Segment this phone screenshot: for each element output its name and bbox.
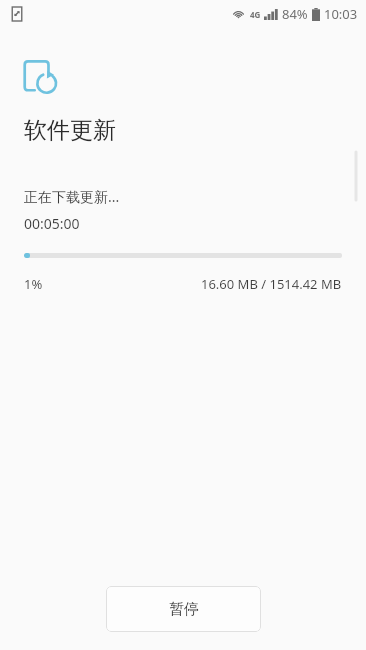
staticText: 16.60 MB / 1514.42 MB [201,275,342,293]
staticText: 00:05:00 [24,214,80,233]
staticText: 正在下载更新... [24,187,120,206]
staticText: 10:03 [324,5,358,23]
staticText: 暂停 [169,600,199,619]
staticText: 1% [24,275,43,293]
staticText: 4G [250,9,261,20]
button[interactable]: 暂停 [106,586,261,632]
staticText: 84% [282,5,308,23]
staticText: 软件更新 [24,116,116,145]
